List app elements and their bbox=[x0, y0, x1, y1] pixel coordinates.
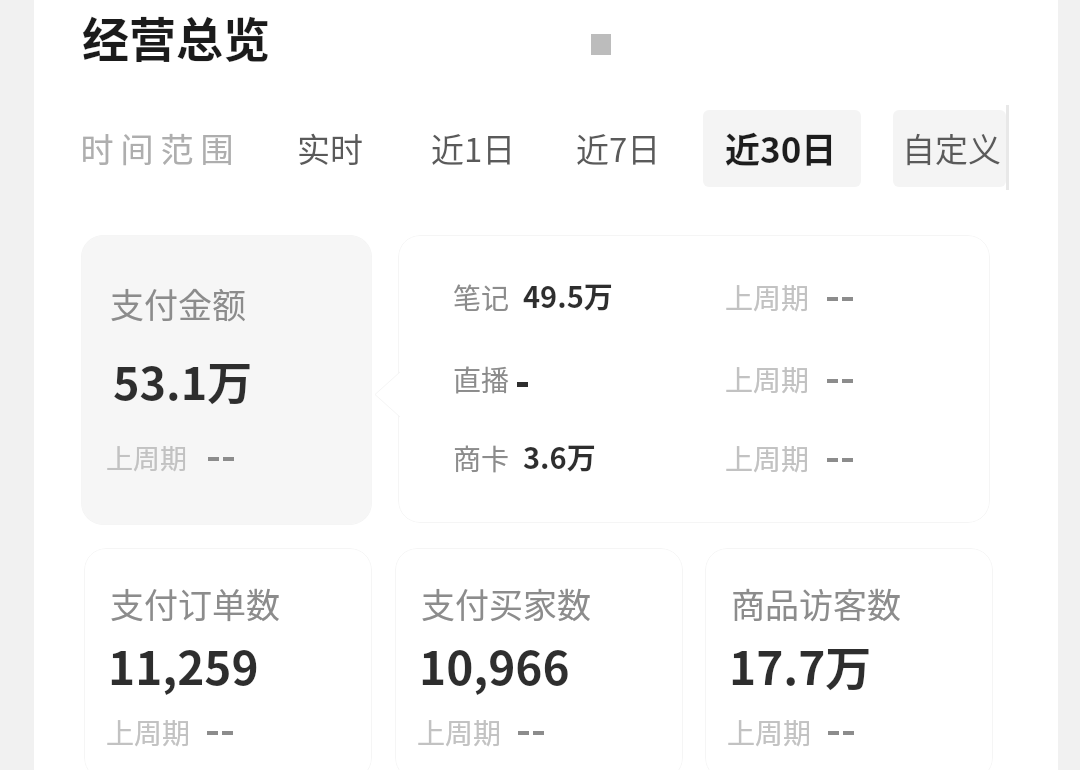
staticText: 支付订单数 bbox=[110, 579, 280, 628]
staticText: 支付买家数 bbox=[421, 579, 591, 628]
staticText: 53.1万 bbox=[113, 348, 253, 413]
staticText: 支付金额 bbox=[110, 279, 246, 328]
staticText: 上周期 bbox=[725, 277, 810, 318]
staticText: 上周期 bbox=[106, 712, 191, 753]
staticText: 笔记 bbox=[453, 277, 510, 318]
button[interactable]: 时间范围 bbox=[77, 124, 237, 172]
staticText: 商卡 bbox=[453, 438, 510, 479]
button[interactable]: 实时 bbox=[297, 124, 363, 172]
button[interactable]: 近1日 bbox=[431, 124, 516, 172]
staticText: 49.5万 bbox=[523, 274, 613, 316]
button[interactable]: 经营总览 bbox=[82, 2, 270, 70]
button[interactable]: 支付订单数 11,259 bbox=[84, 548, 372, 770]
button[interactable]: 自定义日 bbox=[902, 124, 1015, 172]
staticText: 3.6万 bbox=[523, 435, 596, 477]
button[interactable] bbox=[703, 110, 861, 187]
button[interactable]: 支付金额 53.1万 bbox=[81, 235, 372, 525]
staticText: 商品访客数 bbox=[731, 579, 901, 628]
button[interactable]: 近30日 bbox=[725, 122, 837, 173]
button[interactable]: 渠道明细 bbox=[398, 235, 990, 523]
staticText: 上周期 bbox=[725, 359, 810, 400]
staticText: 11,259 bbox=[108, 632, 259, 699]
staticText: 上周期 bbox=[725, 438, 810, 479]
staticText: 直播 bbox=[453, 359, 510, 400]
button[interactable]: 商品访客数 17.7万 bbox=[705, 548, 993, 770]
staticText: 上周期 bbox=[417, 712, 502, 753]
button[interactable]: 近7日 bbox=[576, 124, 661, 172]
staticText: 17.7万 bbox=[729, 632, 872, 699]
button[interactable] bbox=[893, 110, 1006, 187]
button[interactable]: 支付买家数 10,966 bbox=[395, 548, 683, 770]
staticText: 上周期 bbox=[106, 438, 187, 477]
staticText: 上周期 bbox=[727, 712, 812, 753]
staticText: 10,966 bbox=[419, 632, 570, 699]
